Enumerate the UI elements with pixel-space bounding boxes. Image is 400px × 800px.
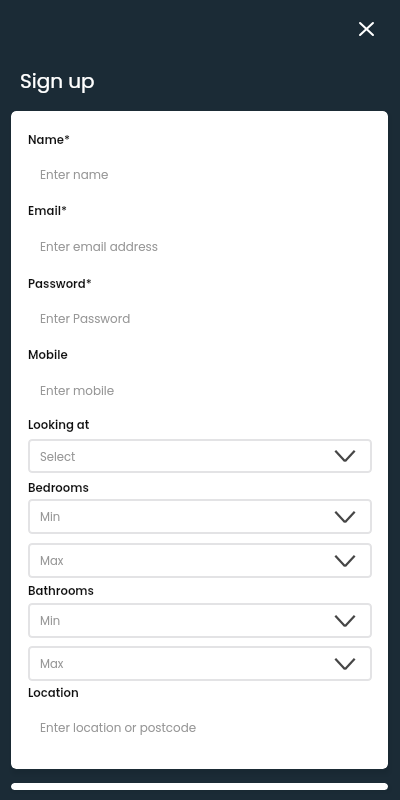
- staticText: Enter email address: [40, 239, 159, 256]
- staticText: Password*: [28, 276, 92, 292]
- button[interactable]: Enter email address: [17, 232, 382, 263]
- staticText: Mobile: [28, 347, 68, 363]
- button[interactable]: Enter Password: [17, 304, 382, 335]
- staticText: Select: [40, 449, 76, 465]
- button[interactable]: Close: [350, 12, 383, 45]
- button[interactable]: Select: [28, 439, 372, 473]
- staticText: Enter Password: [40, 311, 131, 328]
- staticText: Sign up: [20, 67, 95, 95]
- staticText: Min: [40, 613, 61, 629]
- staticText: Max: [40, 553, 64, 569]
- staticText: Max: [40, 656, 64, 672]
- staticText: Enter location or postcode: [40, 720, 197, 737]
- staticText: Enter name: [40, 167, 109, 184]
- staticText: Enter mobile: [40, 383, 115, 400]
- button[interactable]: Enter location or postcode: [17, 713, 382, 744]
- button[interactable]: Min: [28, 499, 372, 534]
- staticText: Looking at: [28, 417, 90, 433]
- staticText: Email*: [28, 203, 67, 219]
- button[interactable]: Max: [28, 543, 372, 578]
- staticText: Name*: [28, 132, 71, 148]
- button[interactable]: Enter name: [17, 160, 382, 191]
- button[interactable]: Min: [28, 603, 372, 638]
- staticText: Min: [40, 509, 61, 525]
- staticText: Location: [28, 685, 79, 701]
- button[interactable]: Enter mobile: [17, 376, 382, 407]
- staticText: Bathrooms: [28, 583, 94, 599]
- button[interactable]: Max: [28, 646, 372, 681]
- staticText: Bedrooms: [28, 480, 89, 496]
